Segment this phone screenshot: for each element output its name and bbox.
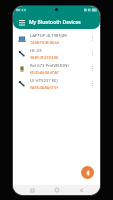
staticText: 9A:E6:4A:8A:37:91: [30, 85, 59, 90]
button[interactable]: More options: [88, 64, 97, 73]
staticText: 6D:25:A6:08:47:A7: [30, 70, 59, 75]
button[interactable]: Home: [52, 185, 62, 195]
button[interactable]: LAPTOP-4LT98FJ4R: [13, 31, 100, 46]
button[interactable]: Back: [76, 185, 86, 195]
staticText: 14:4B:7D:8E:B6:64: [30, 40, 59, 45]
button[interactable]: More options: [88, 49, 97, 58]
button[interactable]: Scan for Bluetooth devices: [81, 166, 94, 179]
button[interactable]: Rel 673 Pro(VISION): [13, 61, 100, 76]
button[interactable]: Recent apps: [27, 185, 37, 195]
staticText: LAPTOP-4LT98FJ4R: [30, 33, 67, 39]
button[interactable]: LE HT9237 EEJ: [13, 76, 100, 91]
button[interactable]: HC-05: [13, 46, 100, 61]
button[interactable]: Open navigation menu: [16, 17, 27, 28]
staticText: 98:DF:3F:37:03:88: [30, 55, 58, 60]
staticText: HC-05: [30, 48, 42, 54]
button[interactable]: More options: [88, 79, 97, 88]
staticText: My Bluetooth Devices: [29, 19, 81, 26]
staticText: Rel 673 Pro(VISION): [30, 63, 69, 69]
staticText: LE HT9237 EEJ: [30, 78, 58, 84]
button[interactable]: More options: [88, 34, 97, 43]
